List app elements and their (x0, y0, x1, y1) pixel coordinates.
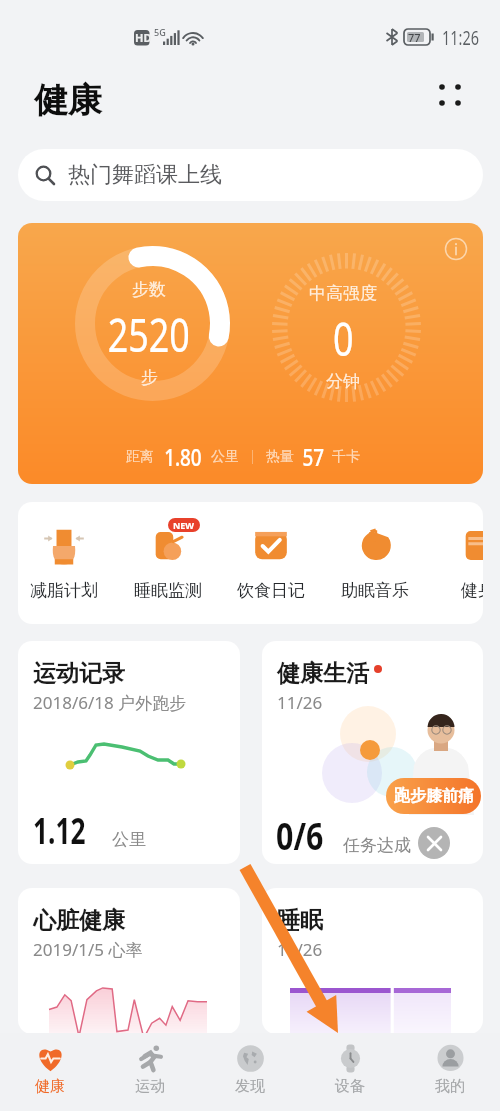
button[interactable]: 发现 (200, 1033, 300, 1111)
staticText: 睡眠 (277, 906, 323, 935)
staticText: 步数 (132, 279, 166, 300)
staticText: 分钟 (326, 371, 360, 392)
button[interactable]: 健身 (426, 502, 483, 624)
staticText: 助眠音乐 (341, 580, 409, 601)
staticText: 2520 (108, 303, 190, 366)
staticText: 2019/1/5 心率 (33, 938, 143, 961)
staticText: 发现 (235, 1077, 265, 1096)
staticText: 我的 (435, 1077, 465, 1096)
staticText: 0 (333, 307, 354, 370)
staticText: 运动记录 (33, 659, 125, 688)
staticText: 心脏健康 (33, 906, 125, 935)
button[interactable]: 健康 (0, 1033, 100, 1111)
button[interactable]: 健康生活 (262, 641, 483, 864)
button[interactable]: 助眠音乐 (323, 502, 427, 624)
staticText: 1.12 (33, 806, 86, 855)
staticText: 距离 (126, 448, 154, 466)
staticText: 睡眠监测 (134, 580, 202, 601)
button[interactable]: More options (432, 77, 468, 113)
button[interactable]: 睡眠 (262, 888, 483, 1034)
staticText: 千卡 (332, 448, 360, 466)
button[interactable]: Info (444, 237, 468, 261)
staticText: 公里 (112, 829, 146, 850)
staticText: 设备 (335, 1077, 365, 1096)
button[interactable]: 减脂计划 (18, 502, 116, 624)
button[interactable]: 饮食日记 (219, 502, 323, 624)
button[interactable]: 心脏健康 (18, 888, 240, 1034)
staticText: 健康 (35, 1077, 65, 1096)
staticText: 步 (141, 367, 158, 388)
button[interactable]: 运动记录 (18, 641, 240, 864)
staticText: 健康生活 (277, 659, 369, 688)
staticText: 跑步膝前痛 (394, 786, 474, 806)
button[interactable]: 设备 (300, 1033, 400, 1111)
staticText: 健康 (34, 79, 102, 122)
button[interactable]: 运动 (100, 1033, 200, 1111)
staticText: NEW (173, 519, 195, 531)
staticText: 运动 (135, 1077, 165, 1096)
button[interactable]: Close (418, 827, 450, 859)
button[interactable]: Info (18, 223, 483, 484)
staticText: 11/26 (277, 691, 323, 714)
staticText: 公里 (211, 448, 239, 466)
staticText: 11/26 (277, 938, 323, 961)
staticText: HD (135, 30, 152, 45)
staticText: 77 (408, 30, 421, 45)
staticText: 2018/6/18 户外跑步 (33, 691, 187, 714)
staticText: 1.80 (164, 441, 202, 472)
staticText: 5G (154, 26, 166, 38)
staticText: 11:26 (442, 25, 479, 51)
staticText: 57 (302, 441, 324, 472)
staticText: 健身 (461, 580, 483, 601)
staticText: 0/6 (276, 809, 324, 861)
button[interactable]: 热门舞蹈课上线 (18, 149, 483, 201)
staticText: 饮食日记 (237, 580, 305, 601)
button[interactable]: 我的 (400, 1033, 500, 1111)
staticText: 中高强度 (309, 283, 377, 304)
button[interactable]: NEW (116, 502, 220, 624)
staticText: 热门舞蹈课上线 (68, 161, 222, 189)
staticText: 任务达成 (343, 835, 411, 856)
staticText: 热量 (266, 448, 294, 466)
staticText: 减脂计划 (30, 580, 98, 601)
